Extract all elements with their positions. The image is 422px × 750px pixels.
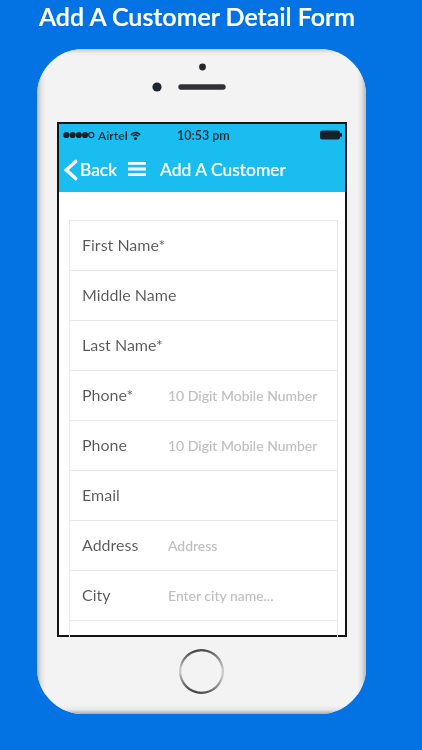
button[interactable]: Middle Name bbox=[69, 271, 338, 321]
staticText: Address bbox=[168, 537, 218, 554]
staticText: Add A Customer Detail Form bbox=[0, 1, 408, 31]
button[interactable]: Phone* bbox=[69, 371, 338, 421]
button[interactable]: First Name* bbox=[69, 221, 338, 271]
staticText: Back bbox=[80, 159, 118, 180]
staticText: Phone* bbox=[82, 385, 134, 404]
staticText: 10 Digit Mobile Number bbox=[168, 387, 318, 404]
button[interactable]: Address bbox=[69, 521, 338, 571]
button[interactable]: Last Name* bbox=[69, 321, 338, 371]
button[interactable]: Home bbox=[179, 649, 224, 694]
button[interactable]: City bbox=[69, 571, 338, 621]
staticText: Enter city name... bbox=[168, 587, 274, 604]
button[interactable]: Phone bbox=[69, 421, 338, 471]
staticText: Add A Customer bbox=[160, 159, 286, 180]
staticText: 10:53 pm bbox=[177, 128, 230, 143]
staticText: Airtel bbox=[98, 128, 128, 142]
staticText: Email bbox=[82, 485, 120, 504]
staticText: Address bbox=[82, 535, 139, 554]
staticText: Middle Name bbox=[82, 285, 177, 304]
button[interactable]: Menu bbox=[124, 152, 149, 186]
staticText: Last Name* bbox=[82, 335, 163, 354]
staticText: 10 Digit Mobile Number bbox=[168, 437, 318, 454]
staticText: First Name* bbox=[82, 235, 166, 254]
staticText: Phone bbox=[82, 435, 127, 454]
button[interactable]: Back bbox=[59, 159, 119, 180]
staticText: City bbox=[82, 585, 111, 604]
button[interactable]: Email bbox=[69, 471, 338, 521]
